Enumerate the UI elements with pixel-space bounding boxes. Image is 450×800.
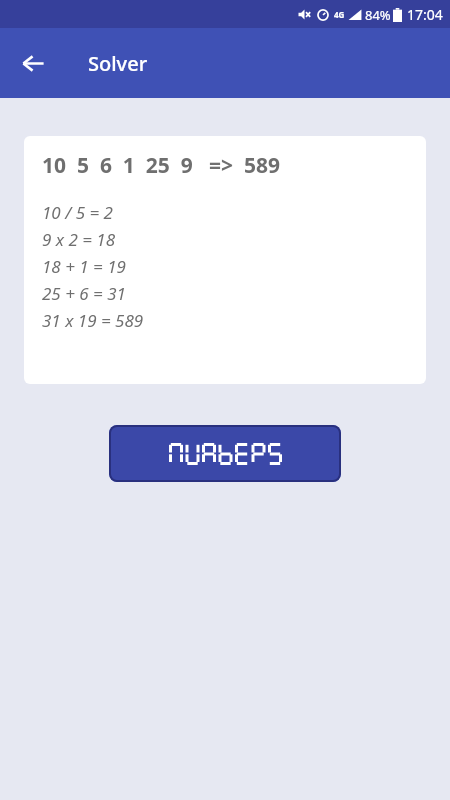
staticText: Solver — [88, 50, 148, 77]
staticText: 17:04 — [407, 5, 443, 24]
staticText: 84% — [365, 6, 391, 24]
staticText: 10 / 5 = 2 — [42, 201, 113, 224]
staticText: 10 5 6 1 25 9 => 589 — [42, 151, 281, 180]
button[interactable]: Numbers — [109, 425, 341, 482]
staticText: 4G — [334, 9, 345, 20]
staticText: 25 + 6 = 31 — [42, 282, 126, 305]
staticText: 18 + 1 = 19 — [42, 255, 126, 278]
staticText: 31 x 19 = 589 — [42, 309, 144, 332]
button[interactable]: Back — [11, 41, 55, 85]
staticText: 9 x 2 = 18 — [42, 228, 116, 251]
